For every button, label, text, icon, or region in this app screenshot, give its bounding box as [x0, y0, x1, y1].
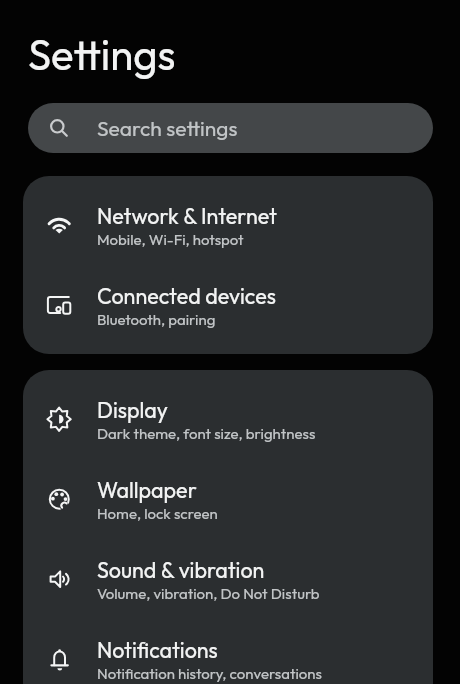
staticText: Network & Internet	[97, 202, 277, 229]
staticText: Search settings	[97, 115, 238, 141]
staticText: Dark theme, font size, brightness	[97, 424, 316, 443]
staticText: Wallpaper	[97, 476, 197, 503]
staticText: Mobile, Wi-Fi, hotspot	[97, 230, 244, 249]
button[interactable]: Wallpaper	[23, 459, 433, 539]
staticText: Display	[97, 396, 168, 423]
staticText: Bluetooth, pairing	[97, 310, 216, 329]
staticText: Volume, vibration, Do Not Disturb	[97, 584, 320, 603]
staticText: Notifications	[97, 636, 218, 663]
staticText: Sound & vibration	[97, 556, 265, 583]
staticText: Home, lock screen	[97, 504, 218, 523]
staticText: Settings	[28, 28, 176, 81]
button[interactable]: Sound & vibration	[23, 539, 433, 619]
button[interactable]: Display	[23, 379, 433, 459]
staticText: Notification history, conversations	[97, 664, 322, 683]
button[interactable]: Notifications	[23, 619, 433, 684]
button[interactable]: Connected devices	[23, 265, 433, 345]
button[interactable]: Network & Internet	[23, 185, 433, 265]
staticText: Connected devices	[97, 282, 276, 309]
button[interactable]: Search settings	[28, 103, 433, 153]
